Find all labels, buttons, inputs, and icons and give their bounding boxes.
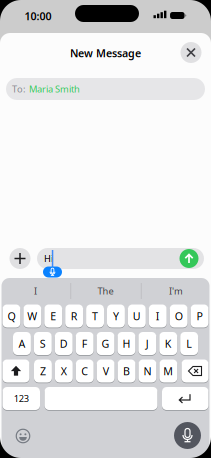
button[interactable]: L <box>180 332 198 355</box>
button[interactable]: Space <box>44 387 157 410</box>
button[interactable]: M <box>159 359 177 382</box>
staticText: G <box>101 336 109 351</box>
staticText: N <box>143 364 151 378</box>
button[interactable]: E <box>44 304 62 327</box>
button[interactable]: I'm <box>143 281 209 301</box>
button[interactable]: Hi <box>37 248 204 269</box>
staticText: T <box>92 309 98 323</box>
staticText: O <box>175 309 183 323</box>
button[interactable]: R <box>65 304 83 327</box>
button[interactable]: Y <box>107 304 125 327</box>
staticText: New Message <box>70 46 141 60</box>
button[interactable]: Z <box>34 359 52 382</box>
staticText: B <box>123 364 130 378</box>
staticText: I <box>156 309 160 323</box>
button[interactable]: F <box>76 332 94 355</box>
staticText: The <box>97 285 113 297</box>
staticText: E <box>50 309 56 323</box>
button[interactable]: Dictation <box>174 422 201 449</box>
button[interactable]: N <box>138 359 156 382</box>
button[interactable]: Return <box>162 387 208 410</box>
button[interactable]: P <box>191 304 208 327</box>
staticText: P <box>196 309 202 323</box>
staticText: S <box>40 336 46 351</box>
button[interactable]: B <box>118 359 135 382</box>
button[interactable]: A <box>13 332 31 355</box>
staticText: K <box>165 336 172 351</box>
staticText: Q <box>7 309 15 323</box>
button[interactable]: S <box>34 332 52 355</box>
staticText: X <box>61 364 67 378</box>
staticText: D <box>60 336 68 351</box>
staticText: To: <box>12 83 26 95</box>
staticText: L <box>186 336 192 351</box>
button[interactable]: G <box>97 332 114 355</box>
staticText: I'm <box>169 285 183 297</box>
staticText: A <box>18 336 25 351</box>
button[interactable]: I <box>149 304 167 327</box>
button[interactable]: Close <box>180 42 201 63</box>
staticText: 123 <box>14 392 29 405</box>
staticText: J <box>146 336 149 351</box>
button[interactable]: O <box>170 304 188 327</box>
button[interactable]: U <box>128 304 146 327</box>
staticText: Hi <box>44 252 53 265</box>
button[interactable]: Send <box>179 249 198 268</box>
button[interactable]: Q <box>2 304 20 327</box>
staticText: F <box>82 336 88 351</box>
button[interactable]: Add attachment <box>9 248 30 269</box>
staticText: R <box>71 309 78 323</box>
button[interactable]: 123 <box>2 387 40 410</box>
staticText: M <box>163 364 173 378</box>
button[interactable]: To: <box>6 78 205 100</box>
staticText: W <box>27 309 37 323</box>
staticText: I <box>34 285 37 297</box>
button[interactable]: C <box>76 359 94 382</box>
staticText: U <box>133 309 141 323</box>
staticText: C <box>81 364 88 378</box>
staticText: H <box>122 336 130 351</box>
staticText: 10:00 <box>24 9 51 23</box>
staticText: V <box>103 364 109 378</box>
button[interactable]: H <box>117 332 135 355</box>
button[interactable]: W <box>23 304 41 327</box>
button[interactable]: D <box>55 332 73 355</box>
button[interactable]: Delete <box>181 359 208 382</box>
staticText: Maria Smith <box>29 83 80 95</box>
button[interactable]: Shift <box>2 359 29 382</box>
staticText: Y <box>113 309 119 323</box>
button[interactable]: T <box>86 304 104 327</box>
button[interactable]: K <box>159 332 177 355</box>
button[interactable]: Emoji <box>16 429 30 443</box>
button[interactable]: I <box>2 281 68 301</box>
button[interactable]: The <box>72 281 138 301</box>
button[interactable]: Dictation <box>43 266 62 277</box>
button[interactable]: X <box>55 359 73 382</box>
button[interactable]: J <box>138 332 156 355</box>
button[interactable]: V <box>97 359 115 382</box>
staticText: Z <box>40 364 46 378</box>
